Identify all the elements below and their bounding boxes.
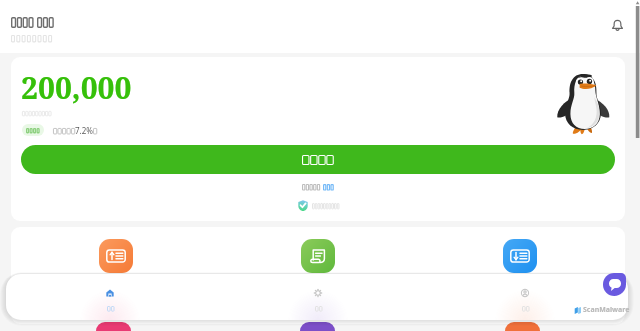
staticText: 200,000 [21,67,132,108]
button[interactable]: Notifications [606,14,628,36]
button[interactable]: Profile [480,274,570,312]
staticText: 7.2% [75,125,93,136]
button[interactable]: Transfer out [99,239,133,273]
button[interactable]: Chat support [603,273,626,296]
button[interactable] [21,145,615,174]
button[interactable]: Transfer in [503,239,537,273]
button[interactable]: Home [65,274,155,312]
staticText: ScanMalware [583,305,630,315]
button[interactable]: Services [273,274,363,312]
button[interactable]: Statement [301,239,335,273]
